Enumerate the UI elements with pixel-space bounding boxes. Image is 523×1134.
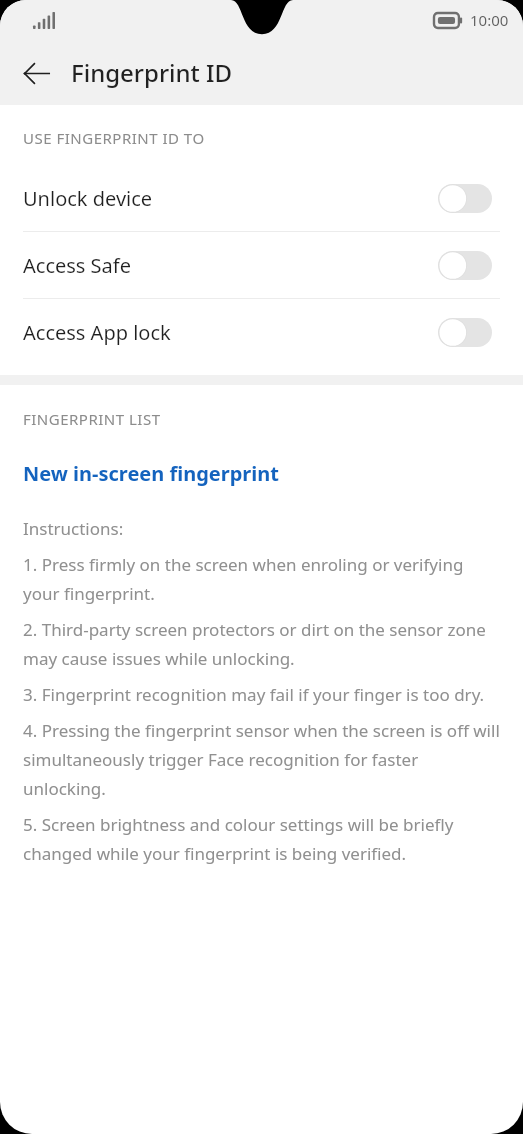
staticText: 2. Third-party screen protectors or dirt… [23, 618, 503, 670]
staticText: 4. Pressing the fingerprint sensor when … [23, 719, 503, 800]
button[interactable]: Access Safe [0, 232, 523, 298]
staticText: New in-screen fingerprint [23, 460, 279, 487]
staticText: 5. Screen brightness and colour settings… [23, 813, 503, 865]
button[interactable]: New in-screen fingerprint [0, 458, 523, 489]
staticText: Fingerprint ID [71, 56, 233, 89]
staticText: Access Safe [23, 252, 438, 279]
button[interactable]: Toggle [438, 184, 492, 213]
button[interactable]: Back [12, 49, 60, 97]
staticText: Instructions: [23, 517, 124, 540]
staticText: Unlock device [23, 185, 438, 212]
staticText: USE FINGERPRINT ID TO [23, 128, 205, 148]
staticText: FINGERPRINT LIST [23, 409, 161, 429]
button[interactable]: Toggle [438, 251, 492, 280]
button[interactable]: Access App lock [0, 299, 523, 365]
staticText: 1. Press firmly on the screen when enrol… [23, 553, 503, 605]
staticText: 3. Fingerprint recognition may fail if y… [23, 683, 485, 706]
button[interactable]: Unlock device [0, 165, 523, 231]
staticText: 10:00 [470, 10, 509, 30]
staticText: Access App lock [23, 319, 438, 346]
button[interactable]: Toggle [438, 318, 492, 347]
